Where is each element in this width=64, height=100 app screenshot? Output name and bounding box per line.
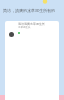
staticText: 水草泥生长 <box>18 26 31 29</box>
staticText: 简洁，清爽的水草泥生所有的 <box>3 8 55 13</box>
button[interactable]: 清洁清爽水草泥生长 <box>9 22 59 29</box>
staticText: 清洁清爽水草泥生长 <box>18 22 45 26</box>
